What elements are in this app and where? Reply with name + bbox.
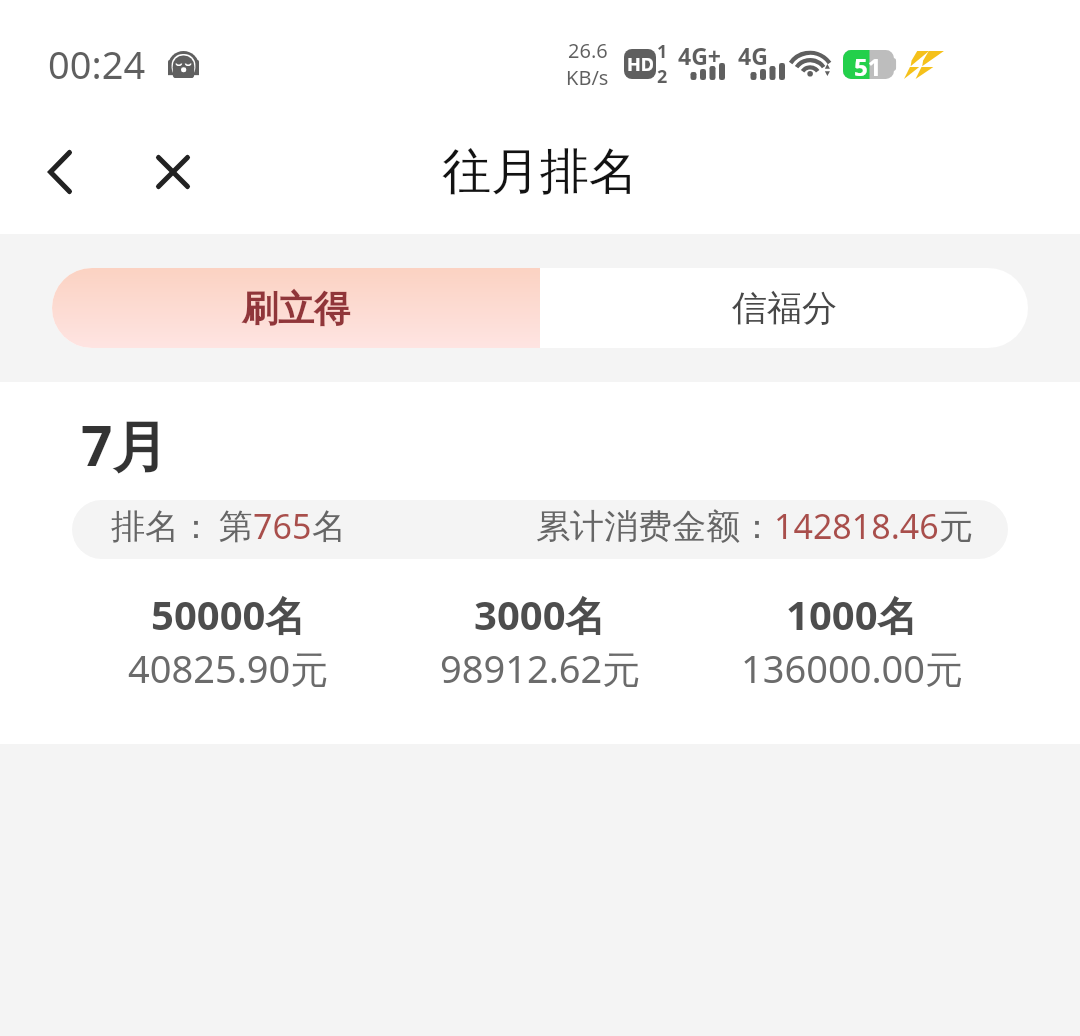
staticText: 1000名 <box>786 587 918 642</box>
staticText: 1 <box>657 39 668 64</box>
staticText: 40825.90元 <box>128 642 329 694</box>
staticText: 排名： <box>111 505 213 548</box>
staticText: 第 <box>219 505 253 548</box>
staticText: 累计消费金额： <box>536 505 774 548</box>
staticText: 7月 <box>81 407 168 482</box>
staticText: 4G <box>738 40 768 71</box>
staticText: 51 <box>854 50 882 79</box>
staticText: HD <box>627 52 654 77</box>
button[interactable]: 信福分 <box>540 268 1028 348</box>
staticText: 2 <box>657 64 668 89</box>
button[interactable]: Close <box>123 121 223 223</box>
staticText: 00:24 <box>48 38 146 90</box>
staticText: 信福分 <box>732 286 837 330</box>
staticText: 4G+ <box>678 40 721 71</box>
staticText: 刷立得 <box>242 286 350 331</box>
staticText: 名 <box>312 505 346 548</box>
staticText: 142818.46 <box>774 503 939 549</box>
staticText: 26.6 <box>568 37 608 64</box>
button[interactable]: 刷立得 <box>52 268 540 348</box>
staticText: 往月排名 <box>442 141 638 203</box>
staticText: 3000名 <box>474 587 606 642</box>
staticText: 136000.00元 <box>741 642 964 694</box>
staticText: 50000名 <box>151 587 306 642</box>
staticText: 765 <box>253 503 312 549</box>
button[interactable]: Back <box>10 121 110 223</box>
staticText: 98912.62元 <box>440 642 641 694</box>
staticText: 元 <box>939 505 973 548</box>
staticText: KB/s <box>566 64 609 91</box>
